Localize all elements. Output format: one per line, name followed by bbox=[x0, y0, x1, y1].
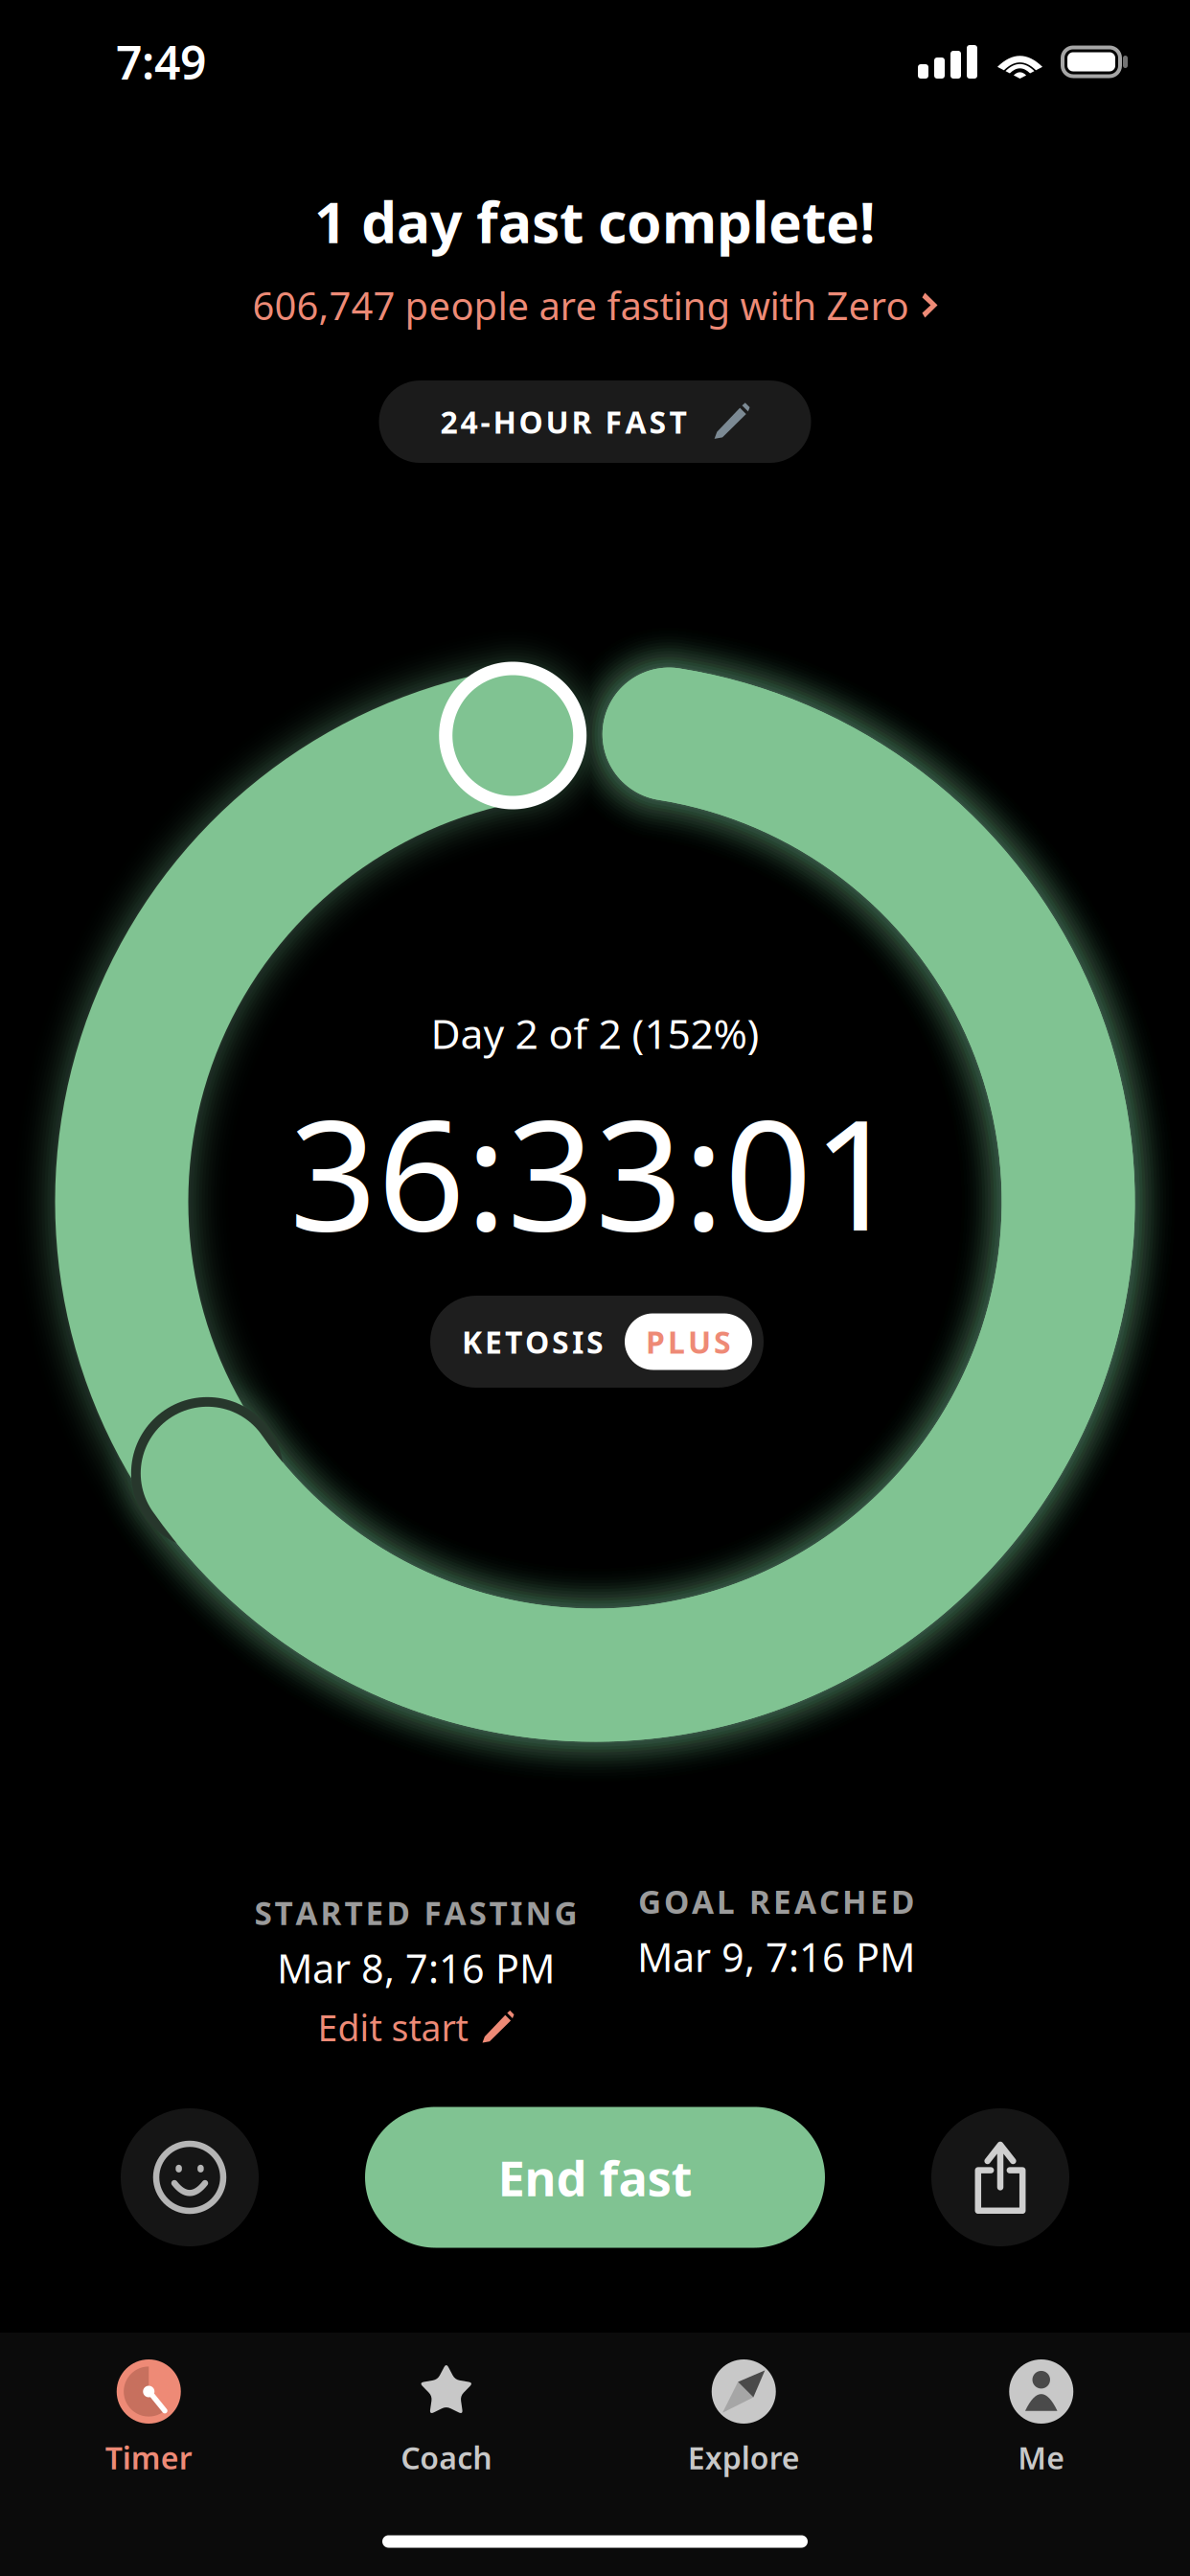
staticText: P L U S bbox=[646, 1321, 731, 1362]
staticText: Me bbox=[1018, 2437, 1065, 2478]
button[interactable]: Explore bbox=[595, 2333, 892, 2497]
staticText: Edit start bbox=[318, 2004, 468, 2051]
staticText: 1 day fast complete! bbox=[314, 184, 876, 259]
staticText: S T A R T E D F A S T I N G bbox=[254, 1891, 577, 1934]
staticText: Day 2 of 2 (152%) bbox=[431, 1006, 759, 1060]
staticText: Mar 8, 7:16 PM bbox=[277, 1941, 555, 1994]
staticText: G O A L R E A C H E D bbox=[638, 1880, 914, 1923]
staticText: End fast bbox=[498, 2145, 692, 2210]
button[interactable]: Timer bbox=[0, 2333, 297, 2497]
button[interactable]: End fast bbox=[365, 2107, 825, 2248]
button[interactable]: Share bbox=[931, 2108, 1069, 2246]
button[interactable]: Mood bbox=[121, 2108, 259, 2246]
staticText: K E T O S I S bbox=[462, 1321, 604, 1362]
staticText: Timer bbox=[105, 2437, 192, 2478]
staticText: Explore bbox=[688, 2437, 800, 2478]
staticText: 2 4 - H O U R F A S T bbox=[440, 401, 687, 442]
staticText: 7:49 bbox=[116, 31, 206, 92]
button[interactable]: Me bbox=[892, 2333, 1190, 2497]
button[interactable]: Edit start bbox=[304, 1994, 527, 2051]
staticText: 36:33:01 bbox=[289, 1069, 901, 1273]
staticText: Coach bbox=[401, 2437, 492, 2478]
staticText: 606,747 people are fasting with Zero bbox=[252, 280, 909, 331]
button[interactable]: Coach bbox=[297, 2333, 595, 2497]
button[interactable]: 606,747 people are fasting with Zero bbox=[239, 259, 951, 331]
staticText: Mar 9, 7:16 PM bbox=[637, 1930, 915, 1983]
button[interactable]: 2 4 - H O U R F A S T bbox=[379, 380, 811, 463]
